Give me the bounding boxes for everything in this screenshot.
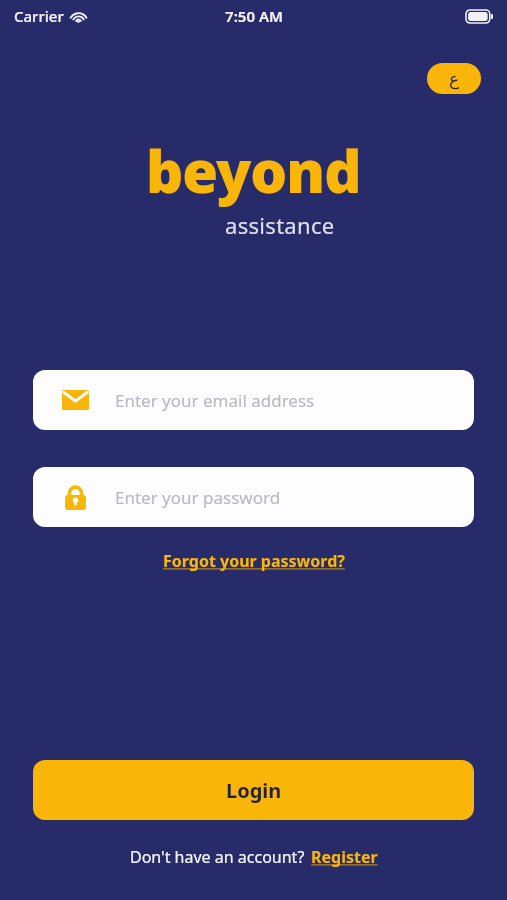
staticText: ع (449, 69, 460, 89)
button[interactable]: Switch language to Arabic (427, 63, 481, 94)
button[interactable]: Password field (33, 467, 474, 527)
staticText: Forgot your password? (163, 550, 345, 572)
button[interactable]: Register (311, 846, 378, 868)
staticText: Carrier (14, 6, 64, 26)
button[interactable]: Forgot your password? (159, 548, 349, 574)
button[interactable]: Login (33, 760, 474, 820)
staticText: Don't have an account? (130, 846, 305, 868)
button[interactable]: Email address field (33, 370, 474, 430)
staticText: Enter your password (115, 486, 281, 509)
staticText: Register (311, 846, 378, 868)
staticText: 7:50 AM (225, 6, 283, 26)
staticText: beyond (146, 131, 361, 210)
staticText: Enter your email address (115, 389, 315, 412)
staticText: Login (226, 777, 282, 804)
staticText: assistance (225, 210, 335, 240)
